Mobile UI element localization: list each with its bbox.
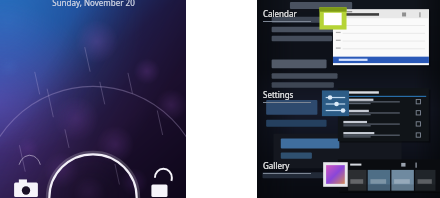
button[interactable]: Gallery: [257, 156, 440, 198]
button[interactable]: Calendar: [257, 4, 440, 83]
button[interactable]: Settings: [257, 85, 440, 152]
staticText: Gallery: [263, 160, 290, 171]
staticText: Settings: [263, 89, 294, 100]
button[interactable]: Camera: [9, 168, 43, 198]
staticText: Calendar: [263, 8, 297, 19]
button[interactable]: Unlock: [148, 168, 174, 198]
staticText: Sunday, November 20: [52, 0, 135, 8]
